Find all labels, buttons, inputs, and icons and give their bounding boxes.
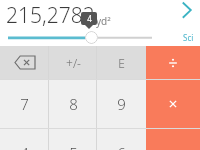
staticText: 7 [20, 94, 29, 114]
staticText: 4 [87, 13, 92, 24]
staticText: 9 [117, 94, 126, 114]
button[interactable]: Slider handle [85, 31, 98, 44]
staticText: 215,2782 [6, 1, 95, 30]
button[interactable]: Next [176, 0, 200, 22]
staticText: yd² [96, 14, 111, 28]
staticText: 5 [69, 143, 78, 150]
button[interactable]: 5 [49, 128, 97, 150]
button[interactable]: Multiply [146, 79, 200, 128]
button[interactable]: E [97, 46, 146, 79]
button[interactable]: 4 [0, 128, 49, 150]
staticText: Sci [183, 32, 194, 43]
button[interactable]: Backspace [0, 46, 49, 79]
button[interactable]: Minus [146, 128, 200, 150]
button[interactable]: Sci [183, 32, 194, 43]
button[interactable]: +/- [49, 46, 97, 79]
staticText: +/- [66, 55, 81, 71]
button[interactable]: 6 [97, 128, 146, 150]
staticText: 8 [69, 94, 78, 114]
staticText: 4 [20, 143, 29, 150]
button[interactable]: 8 [49, 79, 97, 128]
button[interactable]: Divide [146, 46, 200, 79]
staticText: 6 [117, 143, 126, 150]
button[interactable]: 7 [0, 79, 49, 128]
staticText: E [118, 55, 125, 71]
button[interactable]: 9 [97, 79, 146, 128]
